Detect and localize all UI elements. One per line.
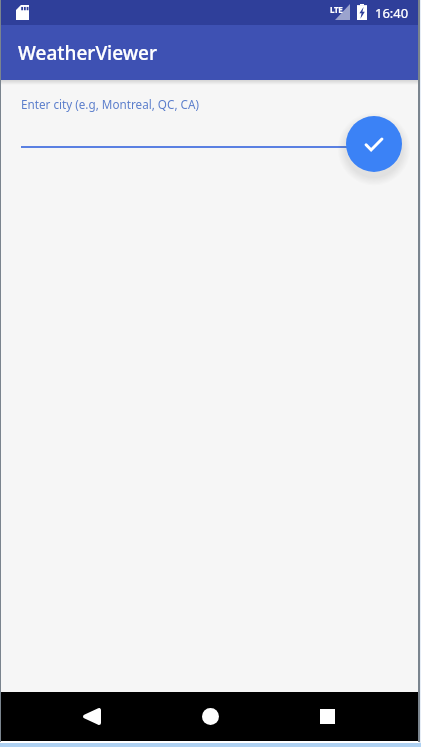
button[interactable]: Back bbox=[68, 692, 116, 740]
button[interactable]: Home bbox=[186, 692, 234, 740]
button[interactable]: Submit city bbox=[346, 116, 402, 172]
staticText: LTE bbox=[330, 4, 343, 15]
button[interactable]: Enter city (e.g, Montreal, QC, CA) bbox=[21, 88, 379, 148]
staticText: WeatherViewer bbox=[18, 40, 158, 66]
staticText: Enter city (e.g, Montreal, QC, CA) bbox=[21, 96, 199, 112]
staticText: 16:40 bbox=[375, 4, 409, 22]
button[interactable]: Recent apps bbox=[303, 692, 351, 740]
